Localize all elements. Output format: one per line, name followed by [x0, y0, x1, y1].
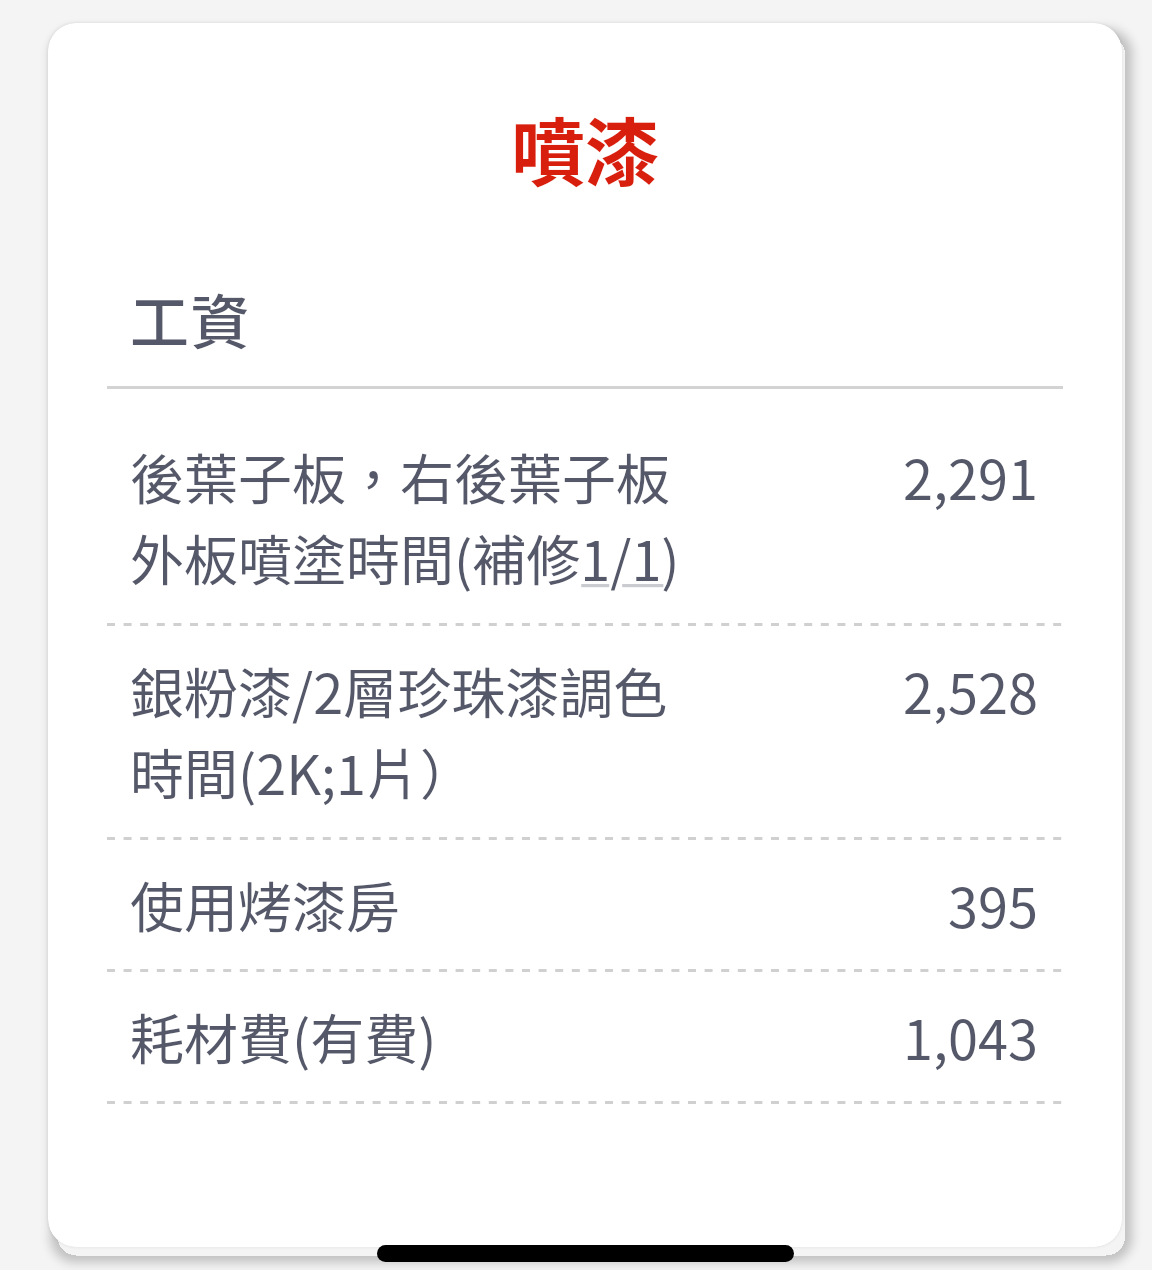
staticText: 使用烤漆房: [130, 865, 400, 943]
staticText: 1,043: [903, 997, 1038, 1075]
staticText: 銀粉漆/2層珍珠漆調色時間(2K;1片）: [130, 651, 695, 811]
staticText: 後葉子板，右後葉子板外板噴塗時間(補修1/1): [130, 437, 695, 597]
button[interactable]: 後葉子板，右後葉子板外板噴塗時間(補修1/1): [107, 389, 1063, 623]
button[interactable]: 耗材費(有費): [107, 972, 1063, 1101]
staticText: 2,528: [903, 651, 1038, 729]
staticText: 工資: [130, 276, 252, 361]
staticText: 噴漆: [48, 94, 1122, 201]
button[interactable]: 銀粉漆/2層珍珠漆調色時間(2K;1片）: [107, 626, 1063, 837]
button[interactable]: 使用烤漆房: [107, 840, 1063, 969]
staticText: 耗材費(有費): [130, 997, 437, 1075]
staticText: 395: [948, 865, 1038, 943]
staticText: 2,291: [903, 437, 1038, 515]
